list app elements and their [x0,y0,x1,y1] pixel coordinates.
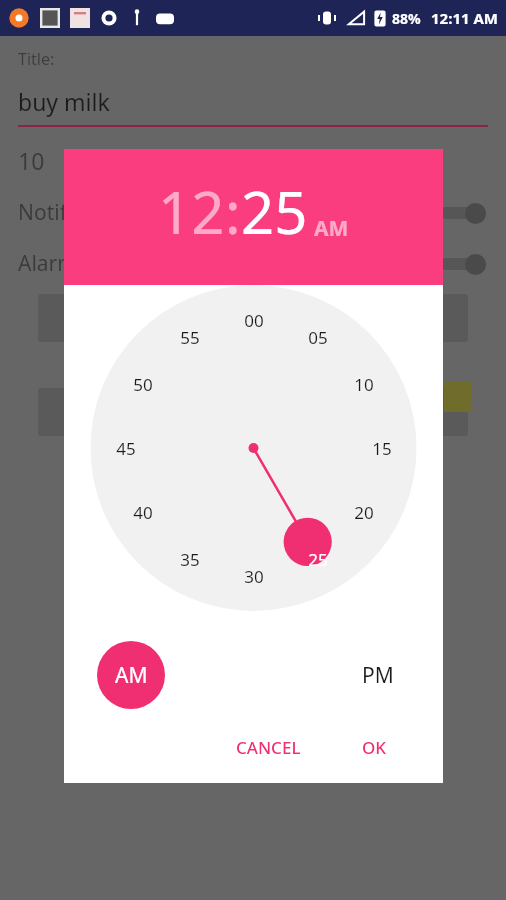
button[interactable] [440,202,486,224]
staticText: 20 [354,501,374,524]
staticText: 88% [392,9,421,28]
staticText: 15 [372,437,392,460]
staticText: 05 [308,326,328,349]
staticText: PM [362,661,394,690]
button[interactable]: OK [362,736,387,759]
staticText: 00 [244,309,264,332]
button[interactable]: PM [344,641,412,709]
button[interactable]: 25 [241,172,308,251]
staticText: 55 [180,326,200,349]
button[interactable]: AM [97,641,165,709]
staticText: 45 [116,437,136,460]
staticText: : [225,172,241,251]
button[interactable] [38,294,468,342]
staticText: 35 [180,548,200,571]
staticText: 10 [354,373,374,396]
staticText: CANCEL [236,736,301,759]
button[interactable]: CANCEL [236,736,301,759]
staticText: AM [115,661,148,690]
staticText: 25 [308,548,328,571]
staticText: Title: [18,48,55,70]
staticText: 10 [18,145,45,176]
button[interactable]: 12 [158,172,225,251]
staticText: OK [362,736,387,759]
staticText: 12:11 AM [431,8,498,28]
button[interactable] [38,388,468,436]
staticText: AM [314,214,349,243]
staticText: buy milk [18,86,110,117]
staticText: 30 [244,565,264,588]
button[interactable] [440,253,486,275]
staticText: 50 [133,373,153,396]
staticText: Alarm [18,249,77,278]
staticText: 40 [133,501,153,524]
staticText: Notification [18,198,133,227]
